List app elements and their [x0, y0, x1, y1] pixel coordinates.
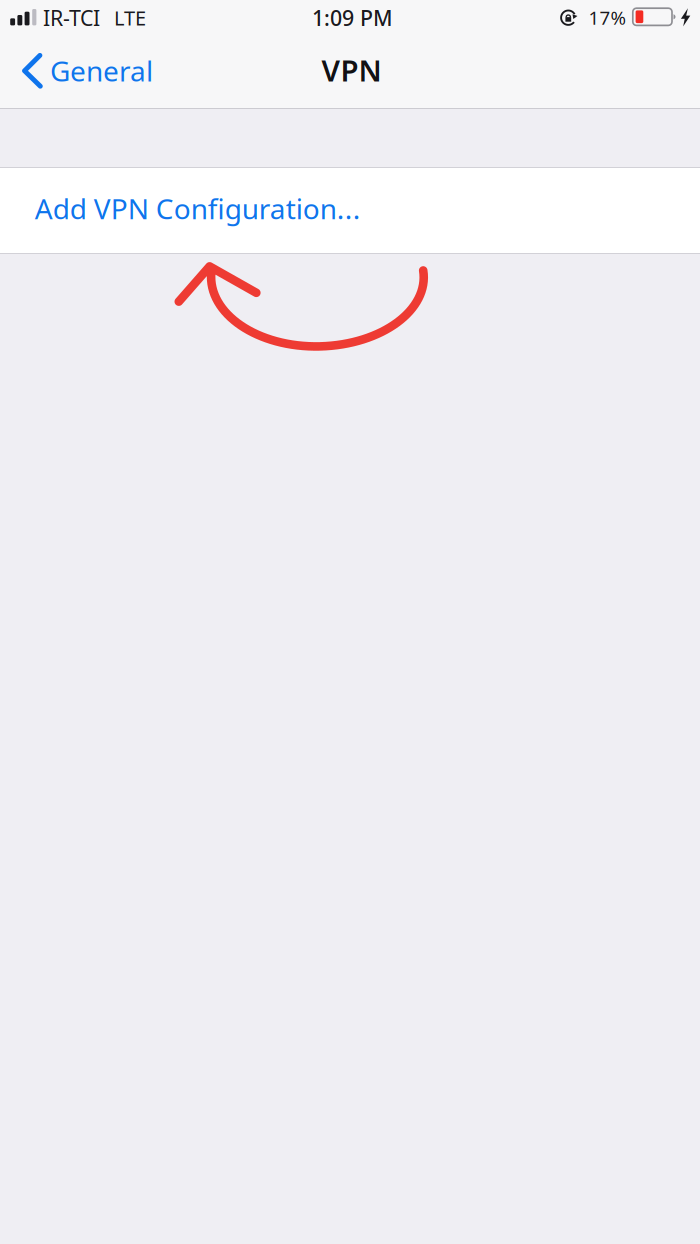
button[interactable]: Add VPN Configuration...	[0, 168, 700, 253]
staticText: General	[50, 52, 153, 89]
staticText: IR-TCI	[43, 4, 100, 32]
button[interactable]: General	[0, 44, 172, 108]
staticText: LTE	[114, 4, 146, 31]
staticText: VPN	[321, 50, 381, 89]
staticText: Add VPN Configuration...	[35, 190, 361, 227]
staticText: 17%	[588, 5, 626, 30]
staticText: 1:09 PM	[312, 3, 393, 32]
